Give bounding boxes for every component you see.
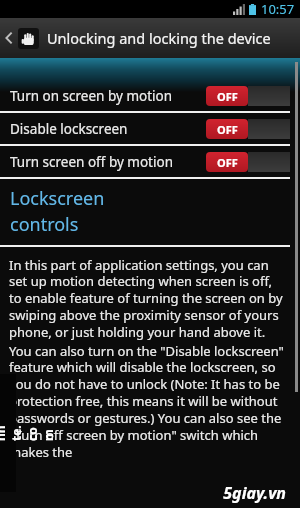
button[interactable]: Turn on screen by motion [0, 80, 300, 111]
staticText: Lockscreen [10, 186, 105, 211]
button[interactable]: Disable lockscreen [0, 113, 300, 144]
staticText: OFF [217, 122, 238, 137]
staticText: OFF [217, 89, 238, 104]
button[interactable]: Turn screen off by motion [0, 146, 300, 177]
staticText: 10:57 [261, 0, 295, 18]
staticText: mt.inhte.com [0, 425, 56, 441]
button[interactable]: Navigate up [0, 18, 300, 58]
staticText: Turn on screen by motion [10, 87, 173, 105]
staticText: controls [10, 212, 79, 237]
staticText: Disable lockscreen [10, 120, 128, 138]
staticText: You can also turn on the "Disable locksc… [9, 342, 288, 461]
staticText: OFF [217, 155, 238, 170]
staticText: 5giay.vn [223, 482, 286, 504]
staticText: In this part of application settings, yo… [9, 256, 288, 341]
staticText: Unlocking and locking the device [47, 28, 271, 48]
staticText: Turn screen off by motion [10, 153, 173, 171]
